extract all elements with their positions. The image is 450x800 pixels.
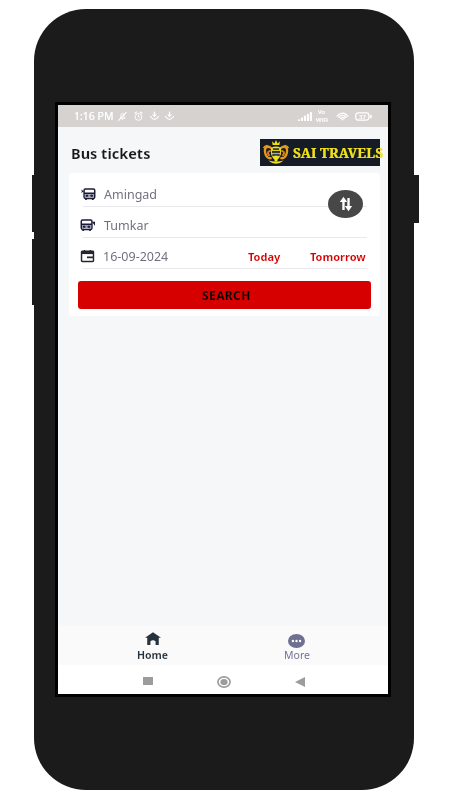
button[interactable]: Today (248, 249, 281, 264)
button[interactable]: More (246, 626, 347, 665)
button[interactable]: Back (286, 668, 314, 696)
button[interactable]: Sai Travels (260, 139, 380, 166)
staticText: Tumkar (104, 217, 149, 234)
button[interactable]: Home (102, 626, 203, 665)
staticText: Today (248, 249, 281, 264)
button[interactable]: Recents (134, 667, 162, 695)
button[interactable]: Tumkar (69, 207, 380, 237)
staticText: More (284, 648, 310, 662)
button[interactable]: Home (210, 668, 238, 696)
button[interactable]: Swap source and destination (328, 190, 363, 218)
button[interactable]: Amingad (69, 173, 380, 206)
staticText: Tomorrow (310, 249, 366, 264)
staticText: Home (137, 648, 169, 662)
staticText: Amingad (104, 186, 158, 203)
staticText: WiFi (316, 116, 328, 124)
button[interactable]: Tomorrow (310, 249, 366, 264)
staticText: Bus tickets (71, 143, 151, 163)
staticText: SEARCH (202, 287, 251, 303)
staticText: 1:16 PM (74, 109, 114, 123)
button[interactable]: 16-09-2024 (103, 248, 169, 265)
staticText: SAI TRAVELS (293, 144, 384, 162)
button[interactable]: SEARCH (78, 281, 371, 309)
staticText: Vo (318, 108, 326, 116)
staticText: 37 (359, 113, 366, 121)
